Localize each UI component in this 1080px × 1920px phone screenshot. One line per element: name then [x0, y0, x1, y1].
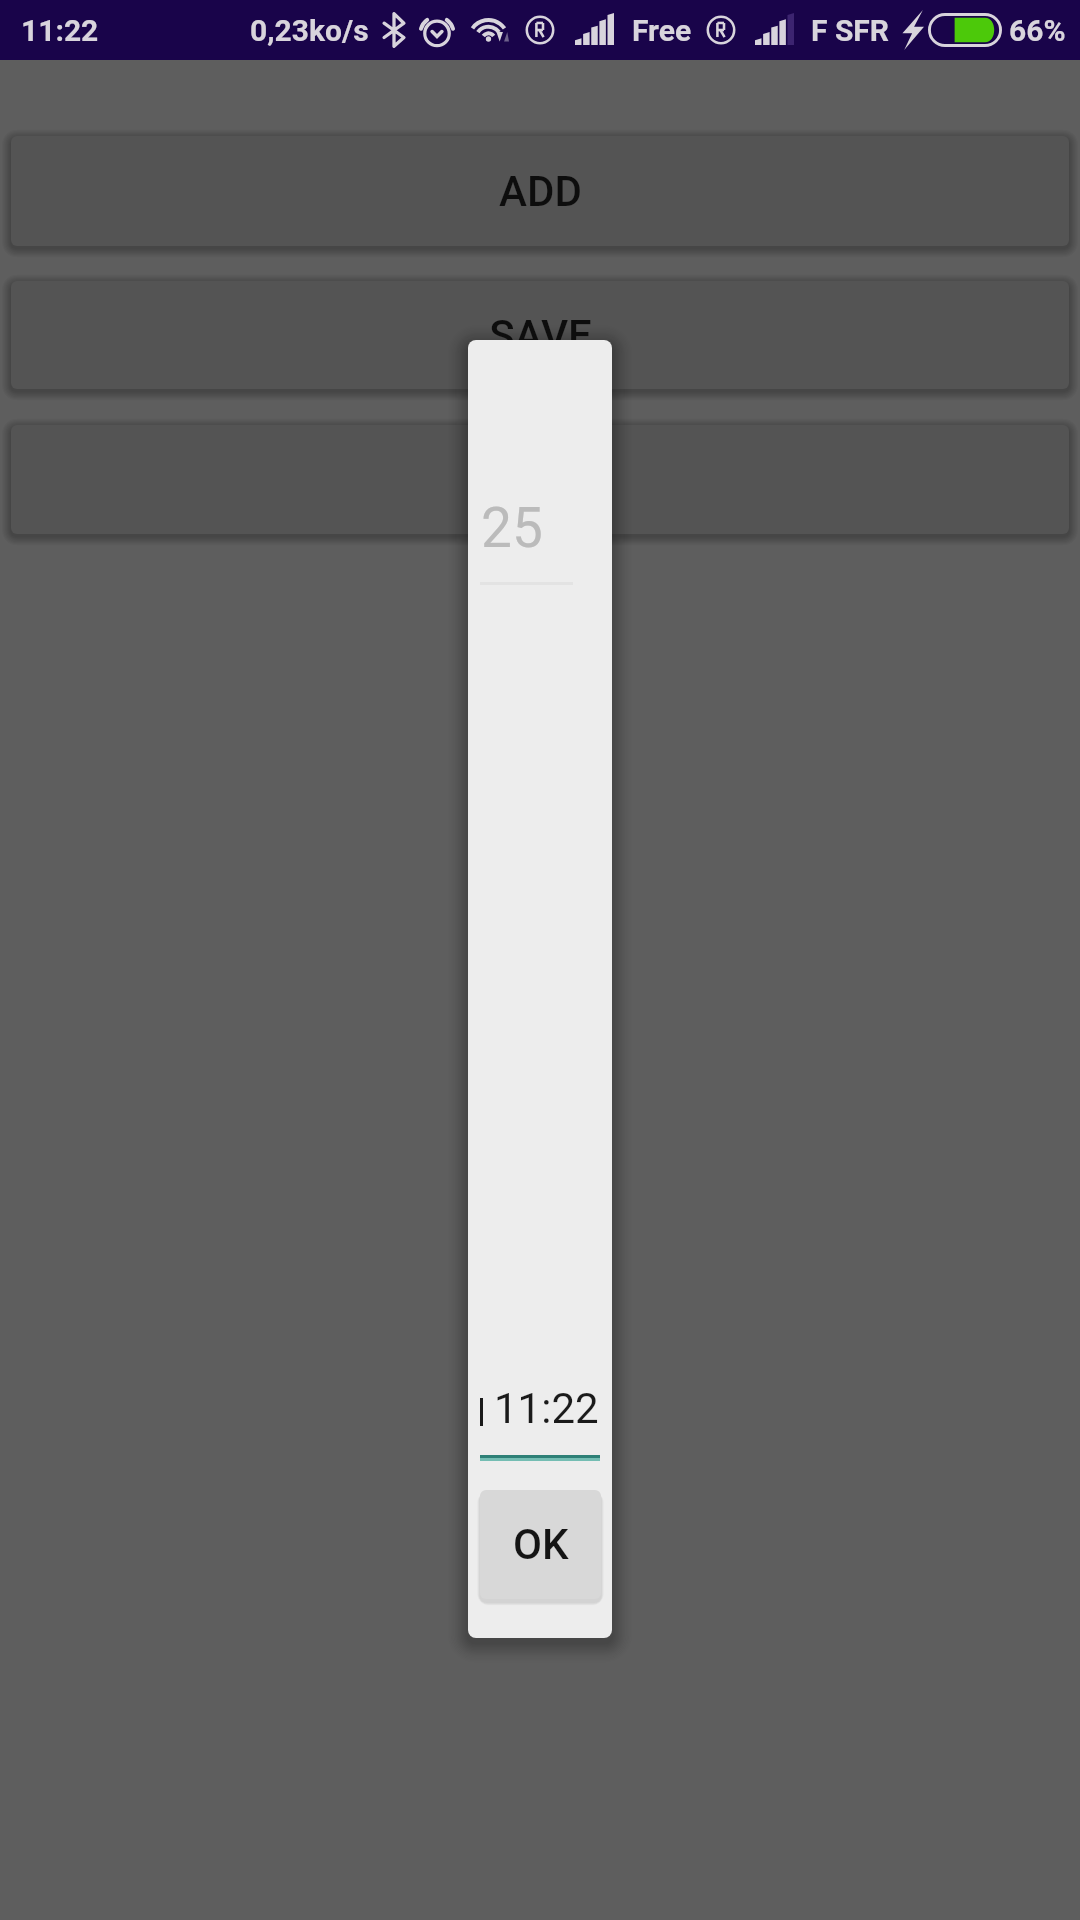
other: Roaming [525, 14, 555, 46]
other: Signal strength [575, 15, 614, 45]
other: Roaming [706, 14, 736, 46]
button[interactable]: ADD [11, 136, 1069, 246]
staticText: OK [513, 1520, 569, 1569]
other: Bluetooth [383, 13, 405, 47]
other: Signal strength [755, 15, 794, 45]
staticText: Free [632, 13, 692, 48]
staticText: 11:22 [494, 1384, 612, 1433]
staticText: 25 [481, 496, 543, 560]
button[interactable]: 25 [480, 480, 600, 590]
staticText: 11:22 [21, 13, 99, 48]
button[interactable] [11, 425, 1069, 534]
other: Alarm [420, 13, 454, 47]
button[interactable]: 11:22 [480, 1370, 600, 1461]
button[interactable]: OK [480, 1490, 601, 1599]
button[interactable]: SAVE [11, 281, 1069, 389]
other: Charging [902, 10, 924, 50]
staticText: ADD [499, 167, 582, 216]
staticText: 0,23ko/s [250, 13, 369, 48]
other: Battery 66 percent [928, 13, 1002, 47]
staticText: SAVE [489, 311, 592, 360]
staticText: F SFR [811, 13, 889, 48]
staticText: 66% [1009, 13, 1066, 48]
other: Wi-Fi [471, 14, 509, 46]
